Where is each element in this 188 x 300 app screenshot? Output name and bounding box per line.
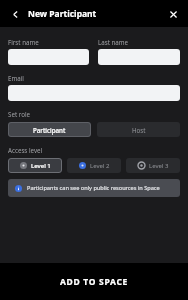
button[interactable]: Level 1 — [8, 158, 62, 173]
staticText: Host — [132, 126, 146, 134]
staticText: Email — [8, 74, 24, 82]
staticText: First name — [8, 38, 39, 46]
button[interactable]: Text input — [98, 49, 180, 65]
staticText: Last name — [98, 38, 129, 46]
button[interactable]: ADD TO SPACE — [0, 263, 188, 300]
button[interactable]: Text input — [8, 85, 180, 101]
staticText: Participants can see only public resourc… — [27, 184, 160, 192]
staticText: Access level — [8, 146, 43, 154]
button[interactable]: Participant — [8, 122, 91, 137]
button[interactable]: Level 2 — [67, 158, 121, 173]
staticText: Level 3 — [149, 162, 169, 170]
button[interactable]: Participants can see only public resourc… — [8, 179, 180, 197]
button[interactable]: Close — [163, 4, 183, 24]
button[interactable]: Host — [97, 122, 180, 137]
staticText: Level 1 — [31, 162, 51, 170]
button[interactable]: Back — [5, 4, 25, 24]
staticText: New Participant — [28, 8, 97, 20]
button[interactable]: Text input — [8, 49, 89, 65]
staticText: ADD TO SPACE — [60, 276, 129, 288]
staticText: Participant — [33, 126, 66, 134]
staticText: Set role — [8, 110, 30, 118]
button[interactable]: Level 3 — [126, 158, 180, 173]
staticText: Level 2 — [90, 162, 110, 170]
